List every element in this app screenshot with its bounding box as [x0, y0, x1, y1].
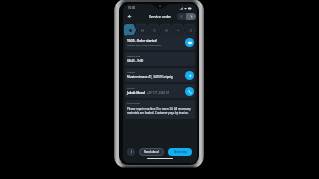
button[interactable]: Step 5 — [172, 24, 184, 36]
staticText: Musterstrasse 41, 34159 Leipzig — [127, 75, 173, 79]
button[interactable]: Step 4 — [160, 24, 172, 36]
staticText: Meeting time — [127, 55, 141, 58]
staticText: Jakob Mund +49 171 2345 67 — [127, 91, 170, 95]
button[interactable]: Previous step — [177, 13, 186, 20]
staticText: Meeting time, Arrive at destination — [127, 44, 162, 47]
staticText: Please repair machine X in room 34. All … — [127, 107, 193, 115]
button[interactable]: Meeting time — [125, 52, 195, 66]
staticText: Read aloud — [144, 150, 159, 154]
button[interactable]: Step 2 — [136, 24, 148, 36]
staticText: Next step — [174, 150, 187, 154]
staticText: i — [131, 150, 132, 154]
button[interactable]: Read aloud — [139, 148, 164, 156]
staticText: Service order — [149, 14, 172, 19]
button[interactable]: Step 1 — [124, 24, 136, 36]
button[interactable]: Address — [125, 68, 195, 82]
staticText: 10:30 - Order started — [127, 39, 157, 43]
staticText: Address — [127, 71, 135, 74]
button[interactable]: 10:30 - Order started — [125, 35, 195, 50]
button[interactable]: Message — [185, 38, 194, 47]
button[interactable]: Info — [127, 148, 135, 156]
staticText: 10:30 — [128, 6, 136, 10]
staticText: 08:45 - 9:00 — [127, 59, 144, 63]
button[interactable]: Contact — [125, 84, 195, 98]
button[interactable]: Step 6 — [184, 24, 196, 36]
button[interactable]: Step 3 — [148, 24, 160, 36]
button[interactable]: Back — [124, 11, 134, 21]
button[interactable]: Next step — [168, 148, 192, 156]
staticText: Service order — [127, 102, 140, 105]
button[interactable]: Next step — [186, 13, 196, 20]
button[interactable]: Navigate — [185, 71, 194, 80]
button[interactable]: Service order — [125, 100, 195, 119]
staticText: Contact — [127, 87, 135, 90]
button[interactable]: Call — [185, 87, 194, 96]
